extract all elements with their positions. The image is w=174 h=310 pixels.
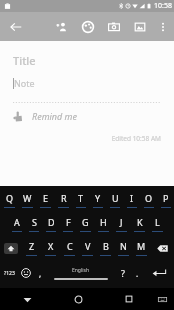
button[interactable]: H [94,212,112,236]
staticText: K [137,216,143,228]
staticText: I [130,192,134,204]
staticText: U [112,192,119,204]
button[interactable]: K [130,212,148,236]
button[interactable]: Title [13,53,161,68]
staticText: ? [121,267,125,279]
button[interactable]: Home [67,288,89,310]
button[interactable]: Backspace [150,236,174,260]
staticText: D [48,216,55,228]
staticText: Z [29,240,35,252]
button[interactable]: Note [13,77,161,89]
staticText: Title [13,53,36,68]
button[interactable]: Enter [144,260,174,286]
button[interactable]: T [72,188,89,212]
staticText: , [39,268,42,279]
staticText: . [136,268,139,279]
staticText: 10:58 [154,1,172,11]
button[interactable]: O [140,188,157,212]
button[interactable]: I [123,188,140,212]
staticText: C [67,240,73,252]
button[interactable]: Emoji [18,260,34,286]
staticText: Remind me [32,110,77,122]
staticText: B [103,240,109,252]
button[interactable]: V [78,236,96,260]
button[interactable]: ? [115,260,131,286]
staticText: Y [95,192,101,204]
button[interactable]: M [132,236,150,260]
button[interactable]: More options [153,17,173,37]
staticText: Edited 10:58 AM [13,134,161,143]
button[interactable]: R [54,188,72,212]
staticText: O [145,192,153,204]
button[interactable]: U [106,188,123,212]
staticText: S [32,216,37,228]
button[interactable]: Add collaborator [49,14,75,40]
button[interactable]: Add photo [101,14,127,40]
button[interactable]: ?123 [0,260,18,286]
button[interactable]: D [42,212,59,236]
staticText: Note [14,77,35,89]
button[interactable]: English [47,260,115,286]
staticText: T [78,192,84,204]
staticText: A [14,216,20,228]
button[interactable]: N [114,236,132,260]
staticText: R [61,192,67,204]
staticText: English [72,267,90,274]
button[interactable]: Change color [75,14,101,40]
button[interactable]: E [36,188,54,212]
button[interactable]: Back [16,288,38,310]
button[interactable]: Recent apps [118,288,140,310]
button[interactable]: W [18,188,36,212]
staticText: Q [6,192,14,204]
button[interactable]: S [25,212,42,236]
button[interactable]: Remind me [13,110,161,122]
staticText: ?123 [4,270,15,277]
staticText: M [137,240,146,252]
staticText: V [85,240,91,252]
button[interactable]: Y [89,188,106,212]
button[interactable]: F [59,212,76,236]
button[interactable]: Shift [0,236,22,260]
button[interactable]: X [41,236,60,260]
staticText: W [23,192,32,204]
button[interactable]: Add image [127,14,153,40]
staticText: X [48,240,54,252]
button[interactable]: B [96,236,114,260]
staticText: G [82,216,89,228]
staticText: H [100,216,107,228]
button[interactable]: . [131,260,144,286]
staticText: N [120,240,127,252]
button[interactable]: , [34,260,47,286]
button[interactable]: A [8,212,25,236]
staticText: E [43,192,49,204]
button[interactable]: J [112,212,130,236]
staticText: F [66,216,71,228]
button[interactable]: P [157,188,174,212]
button[interactable]: Switch keyboard [153,290,171,308]
button[interactable]: Back [3,14,29,40]
button[interactable]: L [148,212,166,236]
button[interactable]: C [60,236,78,260]
button[interactable]: Q [0,188,18,212]
button[interactable]: G [76,212,94,236]
button[interactable]: Z [22,236,41,260]
staticText: J [120,216,123,228]
staticText: L [155,216,160,228]
staticText: P [163,192,169,204]
